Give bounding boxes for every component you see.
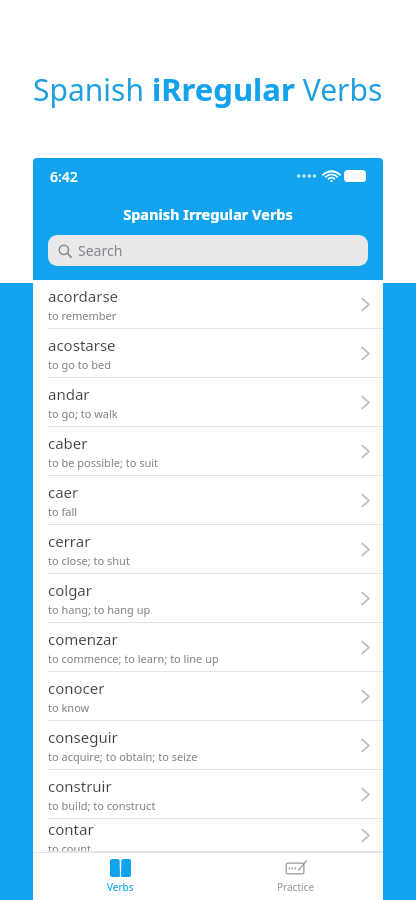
- staticText: to build; to construct: [48, 798, 156, 813]
- staticText: caer: [48, 482, 79, 502]
- staticText: to fall: [48, 504, 78, 519]
- button[interactable]: contar: [33, 819, 383, 852]
- button[interactable]: conseguir: [33, 721, 383, 770]
- button[interactable]: Verbs: [33, 853, 208, 900]
- staticText: to acquire; to obtain; to seize: [48, 749, 198, 764]
- button[interactable]: caer: [33, 476, 383, 525]
- staticText: acordarse: [48, 286, 119, 306]
- staticText: Spanish: [33, 69, 152, 110]
- button[interactable]: Search: [48, 235, 368, 266]
- button[interactable]: colgar: [33, 574, 383, 623]
- button[interactable]: acordarse: [33, 280, 383, 329]
- staticText: caber: [48, 433, 88, 453]
- staticText: to hang; to hang up: [48, 602, 151, 617]
- staticText: Verbs: [107, 880, 134, 894]
- staticText: 6:42: [50, 167, 78, 186]
- staticText: to commence; to learn; to line up: [48, 651, 219, 666]
- staticText: andar: [48, 384, 90, 404]
- button[interactable]: acostarse: [33, 329, 383, 378]
- staticText: to go to bed: [48, 357, 111, 372]
- staticText: comenzar: [48, 629, 118, 649]
- staticText: to count: [48, 841, 91, 851]
- staticText: colgar: [48, 580, 92, 600]
- button[interactable]: conocer: [33, 672, 383, 721]
- staticText: Practice: [277, 880, 315, 894]
- staticText: iRregular: [152, 68, 295, 110]
- staticText: cerrar: [48, 531, 91, 551]
- button[interactable]: caber: [33, 427, 383, 476]
- staticText: conocer: [48, 678, 105, 698]
- staticText: Verbs: [295, 69, 383, 110]
- staticText: to be possible; to suit: [48, 455, 159, 470]
- staticText: to go; to walk: [48, 406, 118, 421]
- staticText: to close; to shut: [48, 553, 130, 568]
- button[interactable]: Practice: [208, 853, 383, 900]
- staticText: construir: [48, 776, 112, 796]
- staticText: contar: [48, 819, 94, 839]
- staticText: acostarse: [48, 335, 116, 355]
- staticText: to know: [48, 700, 90, 715]
- button[interactable]: construir: [33, 770, 383, 819]
- staticText: to remember: [48, 308, 117, 323]
- button[interactable]: andar: [33, 378, 383, 427]
- staticText: conseguir: [48, 727, 118, 747]
- button[interactable]: comenzar: [33, 623, 383, 672]
- staticText: Spanish Irregular Verbs: [123, 204, 293, 224]
- button[interactable]: cerrar: [33, 525, 383, 574]
- staticText: Search: [78, 241, 123, 260]
